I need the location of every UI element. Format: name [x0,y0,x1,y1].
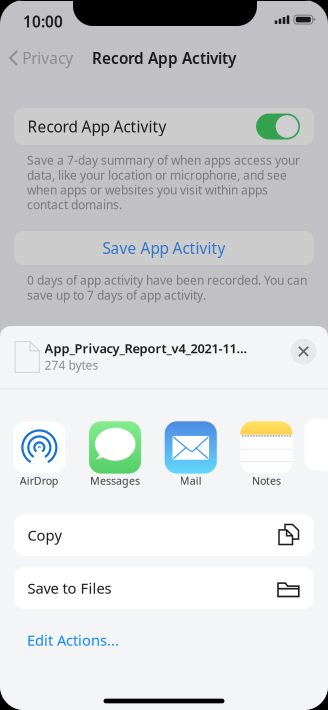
staticText: Copy [27,525,61,545]
staticText: Notes [252,473,281,488]
button[interactable]: Record App Activity [14,108,314,145]
button[interactable]: Messages [77,419,153,491]
staticText: 10:00 [23,11,63,32]
staticText: Privacy [22,48,73,68]
staticText: Mail [180,473,202,488]
staticText: Record App Activity [27,116,166,137]
button[interactable]: Save to Files [14,567,314,609]
button[interactable]: Mail [153,419,229,491]
button[interactable]: Edit Actions... [14,620,314,660]
staticText: Edit Actions... [27,630,119,650]
staticText: AirDrop [20,473,59,488]
button[interactable]: Privacy [0,41,79,75]
staticText: App_Privacy_Report_v4_2021-11-... [45,339,251,357]
staticText: Save a 7-day summary of when apps access… [27,152,300,213]
button[interactable]: Notes [229,419,304,491]
button[interactable]: Copy [14,514,314,556]
staticText: Record App Activity [92,48,236,68]
staticText: 0 days of app activity have been recorde… [27,272,307,303]
staticText: Messages [90,473,140,488]
staticText: Save App Activity [102,238,225,258]
button[interactable]: AirDrop [1,419,77,491]
button[interactable]: Close [290,338,316,364]
staticText: Save to Files [27,578,111,598]
staticText: 274 bytes [45,357,99,373]
button[interactable]: Save App Activity [14,231,314,265]
